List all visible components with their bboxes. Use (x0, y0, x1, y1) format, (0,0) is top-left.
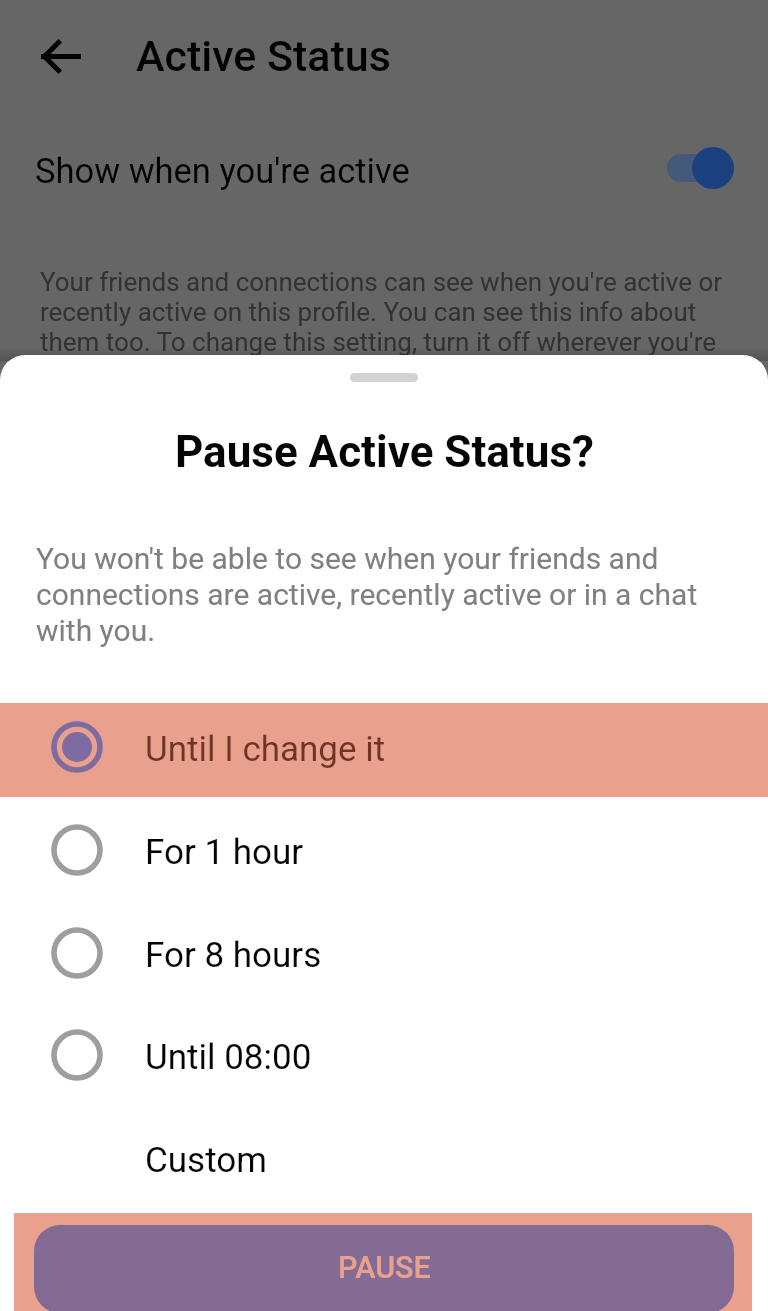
button[interactable]: For 1 hour (0, 806, 768, 900)
button[interactable]: Custom (0, 1114, 768, 1208)
button[interactable]: Until 08:00 (0, 1011, 768, 1105)
button[interactable]: Active status toggle (655, 134, 747, 202)
staticText: You won't be able to see when your frien… (36, 541, 700, 648)
staticText: Until I change it (145, 729, 386, 770)
staticText: PAUSE (338, 1250, 431, 1286)
staticText: For 8 hours (145, 935, 322, 976)
staticText: Active Status (136, 31, 391, 81)
button[interactable]: PAUSE (34, 1225, 734, 1311)
staticText: Until 08:00 (145, 1037, 312, 1078)
staticText: Custom (145, 1140, 267, 1181)
staticText: Pause Active Status? (175, 426, 594, 478)
button[interactable]: Until I change it (0, 703, 768, 797)
button[interactable]: For 8 hours (0, 909, 768, 1003)
staticText: Show when you're active (35, 151, 410, 191)
button[interactable]: Show when you're active (0, 114, 768, 222)
button[interactable]: Back (21, 20, 99, 98)
staticText: For 1 hour (145, 832, 304, 873)
staticText: Your friends and connections can see whe… (40, 267, 726, 357)
